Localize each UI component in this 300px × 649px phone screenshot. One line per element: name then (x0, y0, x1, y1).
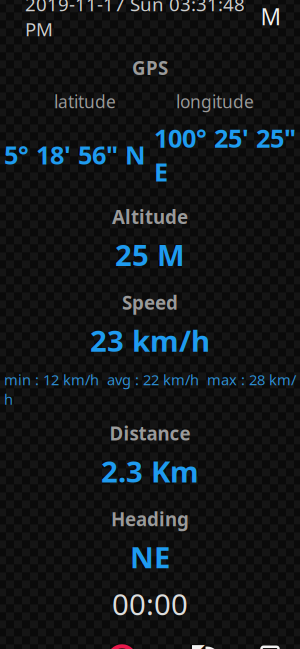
staticText: 100° 25' 25" E (154, 121, 296, 188)
staticText: 5° 18' 56" N (4, 138, 146, 171)
staticText: longitude (176, 90, 254, 113)
button[interactable]: Reset (176, 637, 238, 649)
staticText: 2.3 Km (101, 452, 199, 491)
staticText: Heading (111, 507, 189, 531)
staticText: GPS (132, 55, 168, 80)
staticText: 25 M (115, 235, 185, 274)
button[interactable]: Sessions (238, 637, 294, 649)
staticText: M (260, 1, 281, 32)
staticText: 00:00 (112, 584, 188, 623)
staticText: NE (130, 537, 170, 576)
staticText: 23 km/h (90, 321, 210, 360)
staticText: Speed (122, 290, 178, 315)
button[interactable]: Start recording (91, 637, 153, 649)
staticText: ◤ (191, 640, 204, 649)
staticText: min : 12 km/h avg : 22 km/h max : 28 km/… (4, 370, 296, 409)
staticText: Altitude (112, 204, 188, 229)
staticText: Distance (109, 421, 190, 446)
button[interactable]: Units (256, 2, 286, 30)
staticText: 2019-11-17 Sun 03:31:48 PM (25, 0, 245, 41)
button[interactable]: Menu (6, 637, 68, 649)
staticText: latitude (54, 90, 116, 113)
